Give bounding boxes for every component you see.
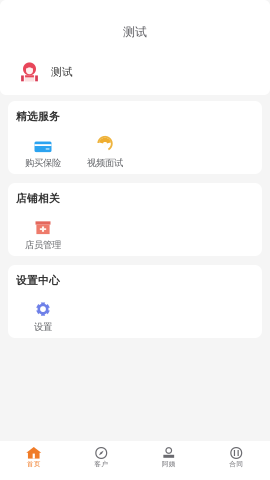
button[interactable]: 合同 (202, 441, 270, 480)
staticText: 测试 (51, 65, 73, 78)
staticText: 客户 (94, 460, 108, 468)
button[interactable]: 店员管理 (12, 221, 74, 251)
staticText: 合同 (229, 460, 243, 468)
button[interactable]: 测试 (0, 39, 270, 96)
button[interactable]: 视频面试 (74, 139, 136, 169)
staticText: 测试 (123, 25, 147, 39)
staticText: 精选服务 (16, 110, 60, 123)
button[interactable]: 设置 (12, 303, 74, 333)
button[interactable]: 首页 (0, 441, 67, 480)
staticText: 购买保险 (25, 157, 61, 169)
staticText: 视频面试 (87, 157, 123, 169)
staticText: 设置 (34, 321, 52, 333)
button[interactable]: 购买保险 (12, 139, 74, 169)
staticText: 设置中心 (16, 274, 60, 287)
staticText: 店员管理 (25, 239, 61, 251)
staticText: 阿姨 (162, 460, 176, 468)
staticText: 店铺相关 (16, 192, 60, 205)
button[interactable]: 阿姨 (135, 441, 202, 480)
staticText: 首页 (27, 460, 41, 468)
button[interactable]: 客户 (67, 441, 135, 480)
